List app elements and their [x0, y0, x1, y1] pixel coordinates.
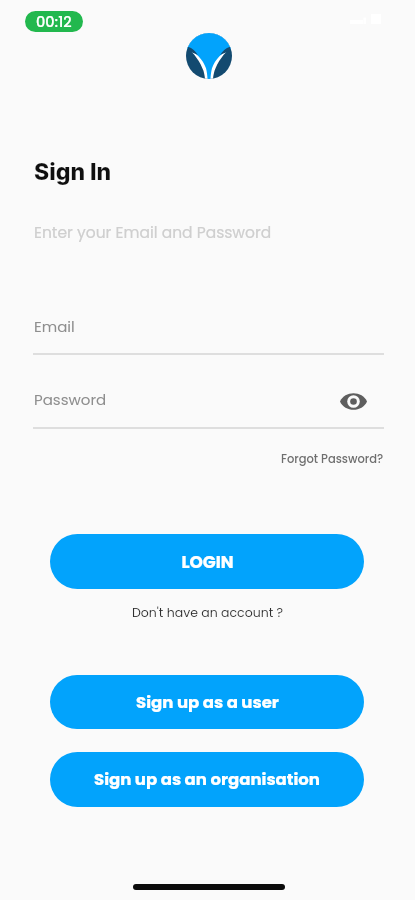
- button[interactable]: Sign up as an organisation: [50, 752, 364, 807]
- staticText: Forgot Password?: [281, 451, 384, 467]
- staticText: Password: [34, 389, 107, 410]
- staticText: LOGIN: [181, 550, 234, 574]
- staticText: 00:12: [36, 12, 72, 32]
- staticText: Sign up as an organisation: [94, 768, 320, 791]
- button[interactable]: Show password: [336, 384, 371, 419]
- button[interactable]: Sign up as a user: [50, 675, 364, 729]
- staticText: Sign up as a user: [136, 691, 279, 714]
- staticText: Enter your Email and Password: [34, 222, 272, 244]
- button[interactable]: Forgot Password?: [281, 451, 384, 467]
- staticText: Sign In: [34, 158, 112, 186]
- staticText: Don't have an account ?: [132, 604, 284, 621]
- staticText: Email: [34, 316, 75, 337]
- button[interactable]: LOGIN: [50, 534, 364, 589]
